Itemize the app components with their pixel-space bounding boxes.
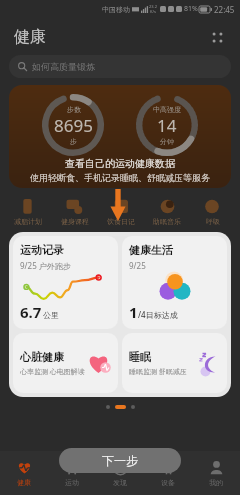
staticText: 健康 (14, 27, 46, 47)
staticText: K/s (150, 9, 156, 14)
staticText: 1 (129, 302, 138, 322)
staticText: 心率监测 心电图解读 (20, 367, 85, 377)
button[interactable]: 呼吸 (190, 197, 236, 226)
button[interactable]: 步数 (9, 85, 231, 188)
button[interactable]: More options (204, 24, 230, 50)
button[interactable]: 健康 (0, 451, 48, 495)
staticText: 使用轻断食、手机记录睡眠、舒眠减压等服务 (9, 172, 231, 183)
button[interactable]: 下一步 (59, 448, 181, 473)
staticText: 81% (184, 4, 198, 14)
button[interactable]: 睡眠 (122, 333, 227, 393)
button[interactable]: 设备 (144, 451, 192, 495)
staticText: 公里 (43, 310, 59, 320)
staticText: /4目标达成 (138, 309, 178, 320)
staticText: 饮食日记 (107, 217, 135, 226)
staticText: 9/25 (129, 260, 146, 271)
staticText: 步 (70, 137, 77, 146)
button[interactable]: 如何高质量锻炼 (9, 55, 231, 78)
staticText: 运动记录 (20, 243, 64, 257)
staticText: 中高强度 (153, 105, 181, 114)
staticText: 如何高质量锻炼 (32, 61, 95, 72)
staticText: 8695 (54, 114, 93, 137)
staticText: 减脂计划 (14, 217, 42, 226)
staticText: 9/25 户外跑步 (20, 260, 71, 271)
staticText: 设备 (161, 478, 175, 487)
staticText: 分钟 (160, 137, 174, 146)
button[interactable]: 饮食日记 (98, 197, 144, 226)
staticText: 健身课程 (61, 217, 89, 226)
staticText: 睡眠监测 舒眠减压 (129, 367, 187, 377)
staticText: 23.2 (149, 4, 157, 9)
staticText: 22:45 (214, 4, 235, 15)
staticText: 下一步 (102, 453, 138, 468)
button[interactable]: 健康生活 (122, 236, 227, 329)
staticText: 健康生活 (129, 243, 173, 257)
button[interactable]: 运动记录 (13, 236, 118, 329)
button[interactable]: 助眠音乐 (144, 197, 190, 226)
staticText: 健康 (17, 478, 31, 487)
staticText: 心脏健康 (20, 350, 64, 364)
button[interactable]: 运动 (48, 451, 96, 495)
staticText: 助眠音乐 (153, 217, 181, 226)
button[interactable]: 我的 (192, 451, 240, 495)
staticText: 步数 (67, 105, 81, 114)
staticText: 睡眠 (129, 350, 151, 364)
staticText: 中国移动 (102, 5, 130, 14)
button[interactable]: 减脂计划 (4, 197, 51, 226)
staticText: 呼吸 (206, 217, 220, 226)
button[interactable]: 发现 (96, 451, 144, 495)
staticText: 查看自己的运动健康数据 (9, 157, 231, 170)
staticText: 6.7 (20, 302, 42, 322)
staticText: 发现 (113, 478, 127, 487)
staticText: 我的 (209, 478, 223, 487)
staticText: 运动 (65, 478, 79, 487)
staticText: 14 (157, 114, 177, 137)
button[interactable]: 健身课程 (51, 197, 98, 226)
button[interactable]: 心脏健康 (13, 333, 118, 393)
